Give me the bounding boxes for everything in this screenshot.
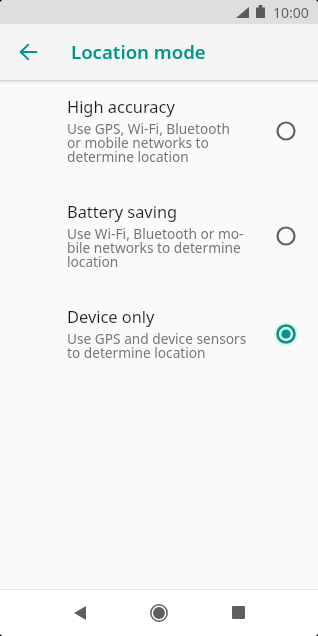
staticText: Use Wi-Fi, Bluetooth or mo- bile network… (67, 224, 244, 271)
staticText: Location mode (71, 39, 206, 64)
staticText: High accuracy (67, 95, 175, 117)
button[interactable]: Battery saving (0, 200, 318, 305)
staticText: Use GPS, Wi-Fi, Bluetooth or mobile netw… (67, 119, 230, 166)
button[interactable]: Back (0, 24, 56, 80)
staticText: Battery saving (67, 200, 178, 222)
staticText: Use GPS and device sensors to determine … (67, 329, 247, 362)
button[interactable]: Device only (0, 305, 318, 410)
button[interactable]: Recents (215, 589, 262, 636)
button[interactable]: Home (135, 589, 182, 636)
button[interactable]: Back (56, 589, 103, 636)
staticText: Device only (67, 305, 155, 327)
staticText: 10:00 (273, 3, 309, 22)
button[interactable]: High accuracy (0, 95, 318, 200)
